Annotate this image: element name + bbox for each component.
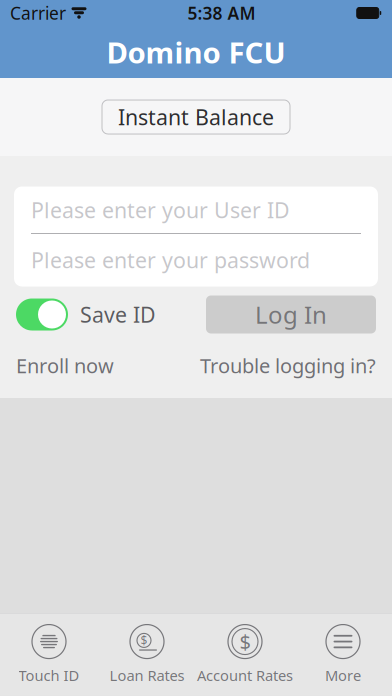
button[interactable]: Save ID <box>16 298 156 330</box>
staticText: Loan Rates <box>109 666 184 685</box>
button[interactable]: $ <box>98 615 196 695</box>
staticText: $ <box>140 632 147 648</box>
staticText: Account Rates <box>197 666 293 685</box>
staticText: Enroll now <box>16 352 114 379</box>
button[interactable]: Log In <box>206 295 376 333</box>
staticText: 5:38 AM <box>187 1 255 24</box>
button[interactable]: $ <box>196 615 294 695</box>
staticText: Domino FCU <box>106 32 285 71</box>
staticText: Instant Balance <box>118 103 274 131</box>
button[interactable]: Enroll now <box>16 352 114 379</box>
button[interactable]: Instant Balance <box>102 100 290 134</box>
staticText: Carrier <box>10 1 66 24</box>
staticText: Log In <box>255 299 327 330</box>
button[interactable]: Touch ID <box>0 615 98 695</box>
staticText: Touch ID <box>18 666 79 685</box>
staticText: Save ID <box>80 300 156 329</box>
staticText: Please enter your password <box>31 246 310 274</box>
staticText: $ <box>239 628 250 655</box>
staticText: More <box>325 666 361 685</box>
button[interactable]: More <box>294 615 392 695</box>
button[interactable]: Trouble logging in? <box>200 352 376 379</box>
staticText: Please enter your User ID <box>31 196 290 224</box>
staticText: Trouble logging in? <box>200 352 376 379</box>
